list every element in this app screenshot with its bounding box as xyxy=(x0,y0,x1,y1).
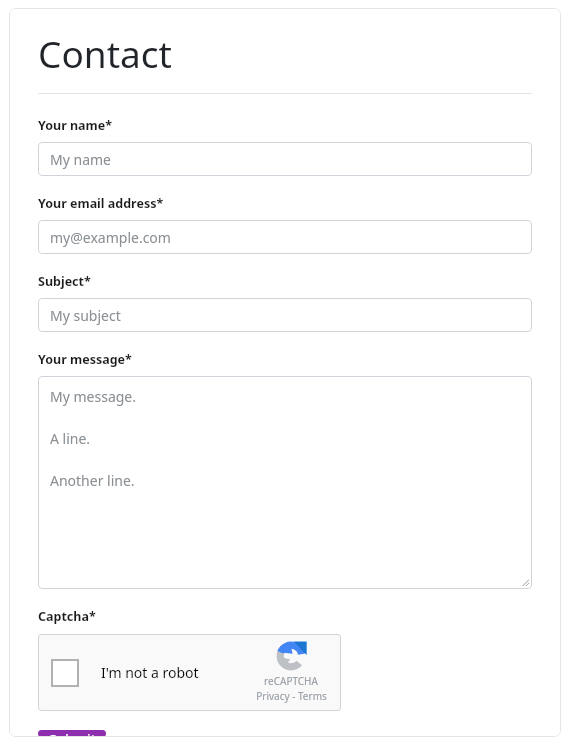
staticText: A line. xyxy=(50,429,91,448)
button[interactable]: I'm not a robot checkbox xyxy=(38,634,341,711)
staticText: Captcha* xyxy=(38,608,96,625)
staticText: Submit xyxy=(49,730,96,737)
staticText: Another line. xyxy=(50,471,135,490)
staticText: Privacy - Terms xyxy=(256,689,327,703)
staticText: Subject* xyxy=(38,273,91,290)
staticText: My subject xyxy=(50,306,121,325)
staticText: Your message* xyxy=(38,351,132,368)
button[interactable]: my@example.com xyxy=(38,220,532,254)
button[interactable]: My subject xyxy=(38,298,532,332)
button[interactable]: My message. xyxy=(38,376,532,589)
staticText: I'm not a robot xyxy=(101,663,199,682)
staticText: My message. xyxy=(50,387,136,406)
staticText: My name xyxy=(50,150,111,169)
button[interactable]: My name xyxy=(38,142,532,176)
button[interactable]: Submit xyxy=(38,730,106,737)
staticText: Your email address* xyxy=(38,195,164,212)
staticText: Contact xyxy=(38,28,172,78)
button[interactable]: I'm not a robot checkbox xyxy=(51,659,79,687)
staticText: reCAPTCHA xyxy=(264,674,318,688)
staticText: my@example.com xyxy=(50,228,171,247)
staticText: Your name* xyxy=(38,117,113,134)
